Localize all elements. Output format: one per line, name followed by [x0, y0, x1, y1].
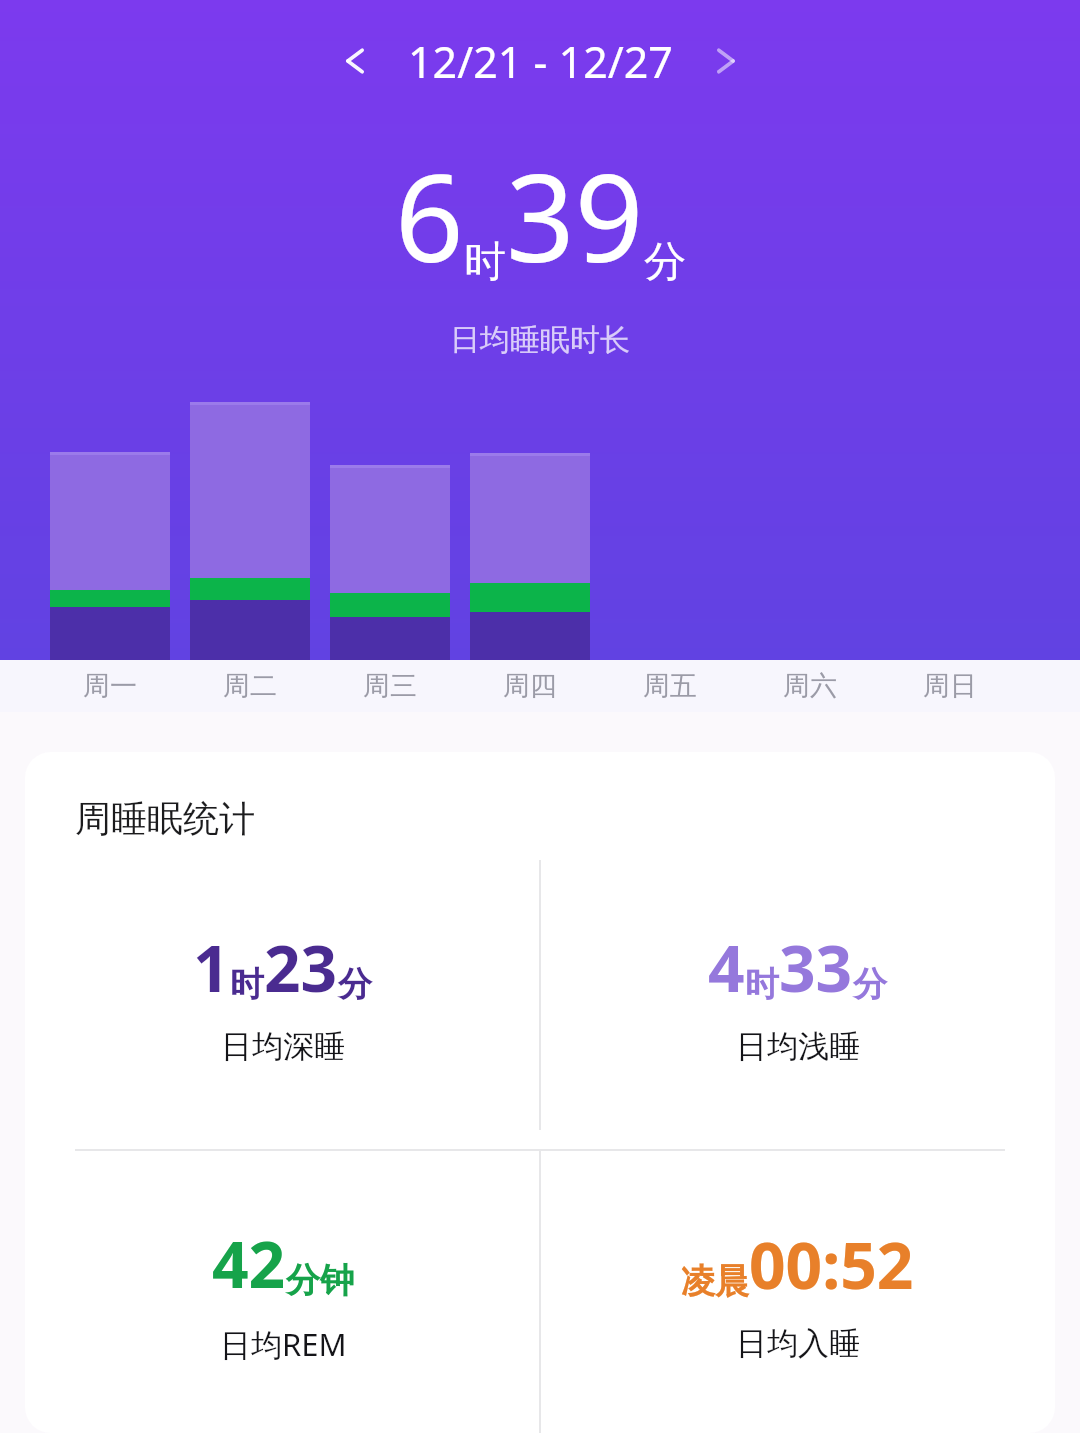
staticText: 日均REM — [220, 1323, 347, 1365]
staticText: 周睡眠统计 — [75, 796, 255, 841]
button[interactable]: Previous week — [320, 26, 390, 96]
staticText: 23 — [264, 924, 338, 1011]
staticText: 分 — [338, 963, 372, 1006]
staticText: 日均入睡 — [736, 1324, 860, 1363]
button[interactable]: Next week — [691, 26, 761, 96]
button[interactable]: 42 — [25, 1151, 540, 1433]
staticText: 周五 — [643, 669, 697, 703]
staticText: 00:52 — [749, 1221, 914, 1308]
staticText: 周三 — [363, 669, 417, 703]
staticText: 凌晨 — [681, 1260, 749, 1303]
staticText: 6 — [395, 134, 464, 297]
staticText: 1 — [193, 924, 230, 1011]
staticText: 周一 — [83, 669, 137, 703]
staticText: 39 — [506, 134, 644, 297]
staticText: 日均睡眠时长 — [450, 321, 630, 359]
staticText: 日均浅睡 — [736, 1027, 860, 1066]
button[interactable]: 凌晨 — [540, 1151, 1055, 1433]
staticText: 周日 — [923, 669, 977, 703]
staticText: 分钟 — [286, 1259, 354, 1302]
staticText: 分 — [644, 236, 686, 289]
staticText: 日均深睡 — [221, 1027, 345, 1066]
staticText: 42 — [212, 1220, 286, 1307]
staticText: 周四 — [503, 669, 557, 703]
button[interactable]: 4 — [540, 841, 1055, 1149]
staticText: 周二 — [223, 669, 277, 703]
staticText: 时 — [230, 963, 264, 1006]
staticText: 4 — [708, 924, 745, 1011]
staticText: 12/21 - 12/27 — [408, 32, 673, 91]
staticText: 时 — [745, 963, 779, 1006]
button[interactable]: 1 — [25, 841, 540, 1149]
staticText: 时 — [464, 236, 506, 289]
staticText: 分 — [853, 963, 887, 1006]
staticText: 周六 — [783, 669, 837, 703]
staticText: 33 — [779, 924, 853, 1011]
